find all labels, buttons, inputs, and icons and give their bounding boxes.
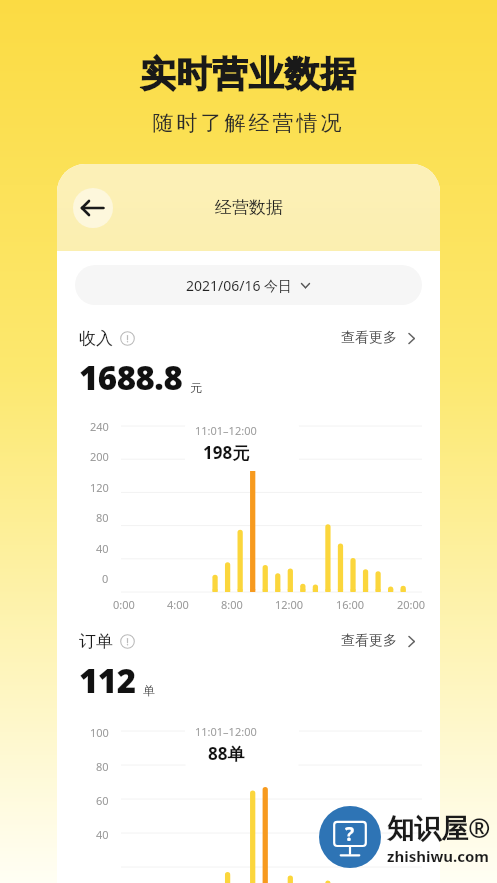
staticText: 100	[90, 725, 109, 740]
button[interactable]: 说明	[120, 331, 135, 346]
button[interactable]: 查看更多	[341, 630, 418, 652]
staticText: 查看更多	[341, 632, 397, 650]
staticText: 经营数据	[215, 197, 283, 218]
staticText: 11:01–12:00	[195, 724, 257, 739]
staticText: 2021/06/16 今日	[186, 276, 293, 295]
staticText: 120	[90, 480, 109, 495]
staticText: 198元	[203, 441, 250, 464]
staticText: 16:00	[336, 597, 365, 612]
staticText: 实时营业数据	[0, 52, 497, 96]
staticText: 元	[190, 380, 202, 395]
staticText: 8:00	[221, 597, 243, 612]
staticText: 单	[143, 683, 155, 698]
staticText: 40	[96, 541, 109, 556]
staticText: 0	[102, 571, 109, 586]
staticText: 240	[90, 419, 109, 434]
staticText: 4:00	[167, 597, 189, 612]
staticText: 查看更多	[341, 329, 397, 347]
staticText: 60	[96, 793, 109, 808]
staticText: ?	[345, 821, 355, 847]
staticText: 200	[90, 449, 109, 464]
staticText: 11:01–12:00	[195, 423, 257, 438]
button[interactable]: 2021/06/16 今日	[75, 265, 422, 305]
staticText: 112	[79, 658, 136, 703]
button[interactable]: 说明	[120, 634, 135, 649]
staticText: 20:00	[397, 597, 426, 612]
staticText: 0:00	[113, 597, 135, 612]
staticText: 收入	[79, 328, 113, 349]
button[interactable]: 返回	[73, 188, 113, 228]
staticText: 1688.8	[79, 355, 183, 400]
button[interactable]: 查看更多	[341, 327, 418, 349]
staticText: 订单	[79, 631, 113, 652]
staticText: 88单	[208, 742, 245, 765]
staticText: 80	[96, 510, 109, 525]
staticText: 12:00	[275, 597, 304, 612]
staticText: 知识屋®	[387, 809, 491, 846]
staticText: 40	[96, 827, 109, 842]
staticText: 80	[96, 759, 109, 774]
staticText: 随时了解经营情况	[0, 110, 497, 136]
staticText: zhishiwu.com	[387, 846, 489, 866]
